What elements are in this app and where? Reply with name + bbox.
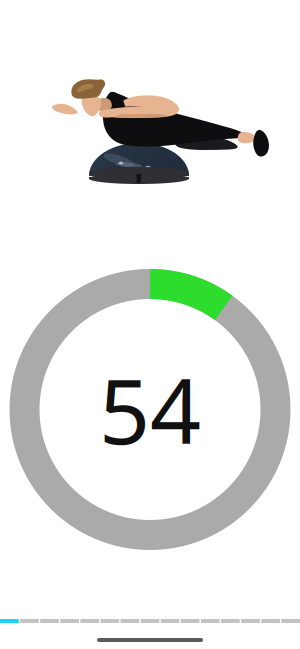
staticText: 54 (99, 350, 201, 469)
